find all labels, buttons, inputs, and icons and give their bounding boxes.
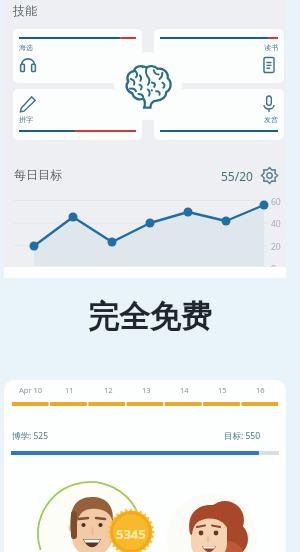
staticText: 目标: 550 [224,430,261,442]
button[interactable]: 拼字 [13,89,142,140]
staticText: 每日目标 [14,167,62,182]
staticText: 60 [271,196,281,208]
staticText: 读书 [264,43,278,52]
staticText: 海选 [19,43,33,52]
staticText: 博学: 525 [12,430,49,442]
staticText: 完全免费 [88,297,212,336]
staticText: 55/20 [221,168,253,184]
staticText: 14 [180,385,189,395]
button[interactable]: Settings [261,167,278,184]
staticText: 15 [218,385,227,395]
staticText: 11 [65,385,74,395]
staticText: 0 [271,263,276,275]
staticText: 13 [142,385,151,395]
staticText: 发音 [264,115,278,124]
button[interactable]: 海选 [13,29,142,83]
staticText: 40 [271,218,281,230]
staticText: Apr 10 [19,385,43,395]
button[interactable]: Brain skills [114,52,182,120]
staticText: 20 [271,241,281,253]
staticText: 16 [256,385,265,395]
staticText: 拼字 [19,115,33,124]
staticText: 技能 [13,3,37,18]
staticText: 5345 [116,525,146,543]
button[interactable]: 发音 [154,89,284,140]
button[interactable]: 读书 [154,29,284,83]
staticText: 12 [104,385,113,395]
